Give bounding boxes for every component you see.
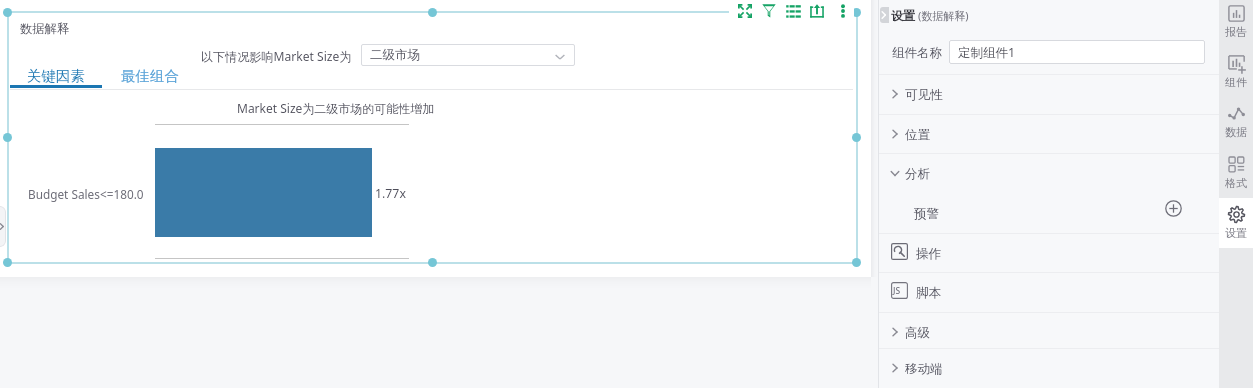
staticText: 报告 [1225, 25, 1247, 39]
button[interactable]: Add alert [1165, 200, 1182, 217]
button[interactable]: 报告 [1219, 0, 1253, 47]
button[interactable]: 移动端 [878, 348, 1219, 387]
button[interactable]: Fullscreen [737, 2, 753, 18]
staticText: 数据解释 [20, 21, 70, 36]
button[interactable]: Collapse panel [880, 7, 889, 23]
button[interactable]: Expand panel [0, 206, 6, 247]
staticText: 关键因素 [27, 67, 85, 85]
staticText: 定制组件1 [958, 44, 1016, 61]
staticText: Budget Sales<=180.0 [28, 186, 144, 202]
staticText: 二级市场 [370, 47, 420, 63]
button[interactable]: 格式 [1219, 148, 1253, 198]
button[interactable]: 高级 [878, 312, 1219, 351]
button[interactable]: 组件 [1219, 47, 1253, 97]
staticText: 组件 [1225, 75, 1247, 89]
staticText: 格式 [1225, 176, 1247, 190]
staticText: 以下情况影响Market Size为 [201, 48, 352, 65]
staticText: 移动端 [905, 361, 943, 377]
staticText: 分析 [905, 166, 930, 182]
button[interactable]: 操作 [878, 233, 1219, 272]
button[interactable]: 可见性 [878, 74, 1219, 113]
staticText: 可见性 [905, 87, 943, 103]
button[interactable]: Filter [761, 2, 777, 18]
staticText: 数据 [1225, 125, 1247, 139]
button[interactable]: 定制组件1 [949, 40, 1205, 64]
staticText: 设置 [891, 8, 915, 23]
button[interactable]: More options [835, 2, 851, 18]
staticText: 组件名称 [892, 45, 942, 61]
staticText: 高级 [905, 325, 930, 341]
staticText: 位置 [905, 127, 930, 143]
button[interactable]: List [785, 2, 801, 18]
staticText: 预警 [914, 206, 939, 222]
button[interactable]: 最佳组合 [111, 63, 189, 88]
button[interactable]: 位置 [878, 114, 1219, 153]
staticText: 最佳组合 [121, 67, 179, 85]
button[interactable]: 预警 [878, 193, 1219, 232]
staticText: (数据解释) [918, 8, 969, 23]
button[interactable]: JS [878, 272, 1219, 311]
staticText: 设置 [1225, 226, 1247, 240]
button[interactable]: 二级市场 [361, 44, 575, 66]
staticText: Market Size为二级市场的可能性增加 [237, 100, 435, 116]
button[interactable]: 数据 [1219, 97, 1253, 147]
staticText: 1.77x [375, 185, 406, 202]
staticText: 脚本 [916, 285, 941, 301]
button[interactable]: 分析 [878, 153, 1219, 192]
staticText: JS [893, 285, 901, 297]
button[interactable]: 设置 [1219, 198, 1253, 248]
staticText: 操作 [916, 246, 941, 262]
button[interactable]: 关键因素 [10, 63, 102, 88]
button[interactable]: Export [809, 2, 825, 18]
